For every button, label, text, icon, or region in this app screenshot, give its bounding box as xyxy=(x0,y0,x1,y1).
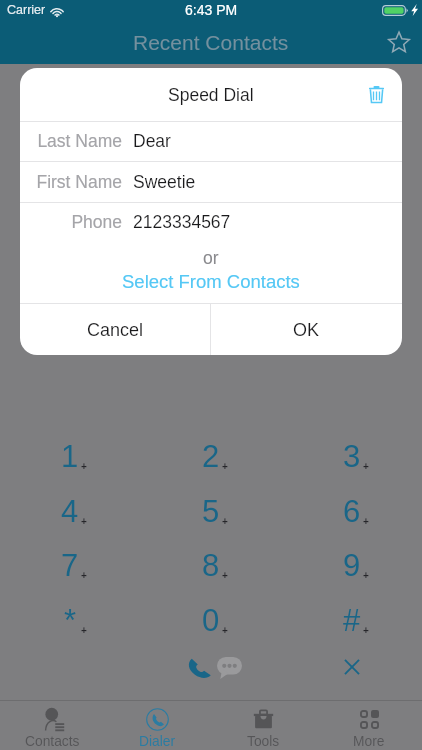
staticText: + xyxy=(81,516,87,527)
button[interactable]: 7 xyxy=(0,544,140,586)
staticText: + xyxy=(363,570,369,581)
button[interactable]: Select From Contacts xyxy=(122,271,300,292)
staticText: * xyxy=(64,603,77,638)
button[interactable]: 4 xyxy=(0,490,140,532)
button[interactable]: Cancel xyxy=(20,304,210,355)
staticText: 8 xyxy=(202,548,220,583)
staticText: Contacts xyxy=(25,734,80,749)
button[interactable]: More xyxy=(316,700,422,750)
staticText: 6 xyxy=(343,494,361,529)
staticText: + xyxy=(81,625,87,636)
button[interactable]: Contacts xyxy=(0,700,105,750)
staticText: + xyxy=(81,570,87,581)
staticText: 9 xyxy=(343,548,361,583)
staticText: Cancel xyxy=(87,320,144,340)
button[interactable]: Call xyxy=(140,647,281,689)
staticText: or xyxy=(203,248,219,268)
staticText: + xyxy=(363,461,369,472)
staticText: 5 xyxy=(202,494,220,529)
staticText: Phone xyxy=(20,212,122,232)
button[interactable]: * xyxy=(0,599,140,641)
button[interactable]: 9 xyxy=(281,544,422,586)
button[interactable]: OK xyxy=(211,304,402,355)
staticText: 4 xyxy=(61,494,79,529)
button[interactable]: 3 xyxy=(281,435,422,477)
staticText: Select From Contacts xyxy=(122,271,300,292)
staticText: Carrier xyxy=(7,3,46,17)
staticText: + xyxy=(222,625,228,636)
staticText: + xyxy=(222,461,228,472)
staticText: OK xyxy=(293,320,320,340)
button[interactable]: # xyxy=(281,599,422,641)
staticText: + xyxy=(222,570,228,581)
button[interactable]: Delete xyxy=(358,77,394,111)
staticText: Dear xyxy=(133,131,171,151)
staticText: + xyxy=(363,516,369,527)
staticText: + xyxy=(363,625,369,636)
staticText: + xyxy=(81,461,87,472)
button[interactable]: 2 xyxy=(140,435,281,477)
staticText: 1 xyxy=(61,439,79,474)
button[interactable]: Tools xyxy=(210,700,316,750)
staticText: 3 xyxy=(343,439,361,474)
button[interactable]: 5 xyxy=(140,490,281,532)
button[interactable]: 1 xyxy=(0,435,140,477)
staticText: 6:43 PM xyxy=(185,2,238,18)
staticText: First Name xyxy=(20,172,122,192)
button[interactable]: Favorites xyxy=(381,24,417,60)
staticText: Tools xyxy=(247,734,280,749)
staticText: + xyxy=(222,516,228,527)
button[interactable]: 0 xyxy=(140,599,281,641)
staticText: 0 xyxy=(202,603,220,638)
staticText: 2 xyxy=(202,439,220,474)
staticText: # xyxy=(343,603,361,638)
staticText: 2123334567 xyxy=(133,212,231,232)
staticText: Dialer xyxy=(139,734,176,749)
staticText: Sweetie xyxy=(133,172,196,192)
button[interactable]: Dialer xyxy=(105,700,210,750)
button[interactable]: 8 xyxy=(140,544,281,586)
staticText: Recent Contacts xyxy=(133,31,289,54)
button[interactable]: Backspace xyxy=(281,647,422,689)
staticText: Last Name xyxy=(20,131,122,151)
staticText: More xyxy=(353,734,385,749)
staticText: 7 xyxy=(61,548,79,583)
staticText: Speed Dial xyxy=(168,85,254,105)
button[interactable]: 6 xyxy=(281,490,422,532)
